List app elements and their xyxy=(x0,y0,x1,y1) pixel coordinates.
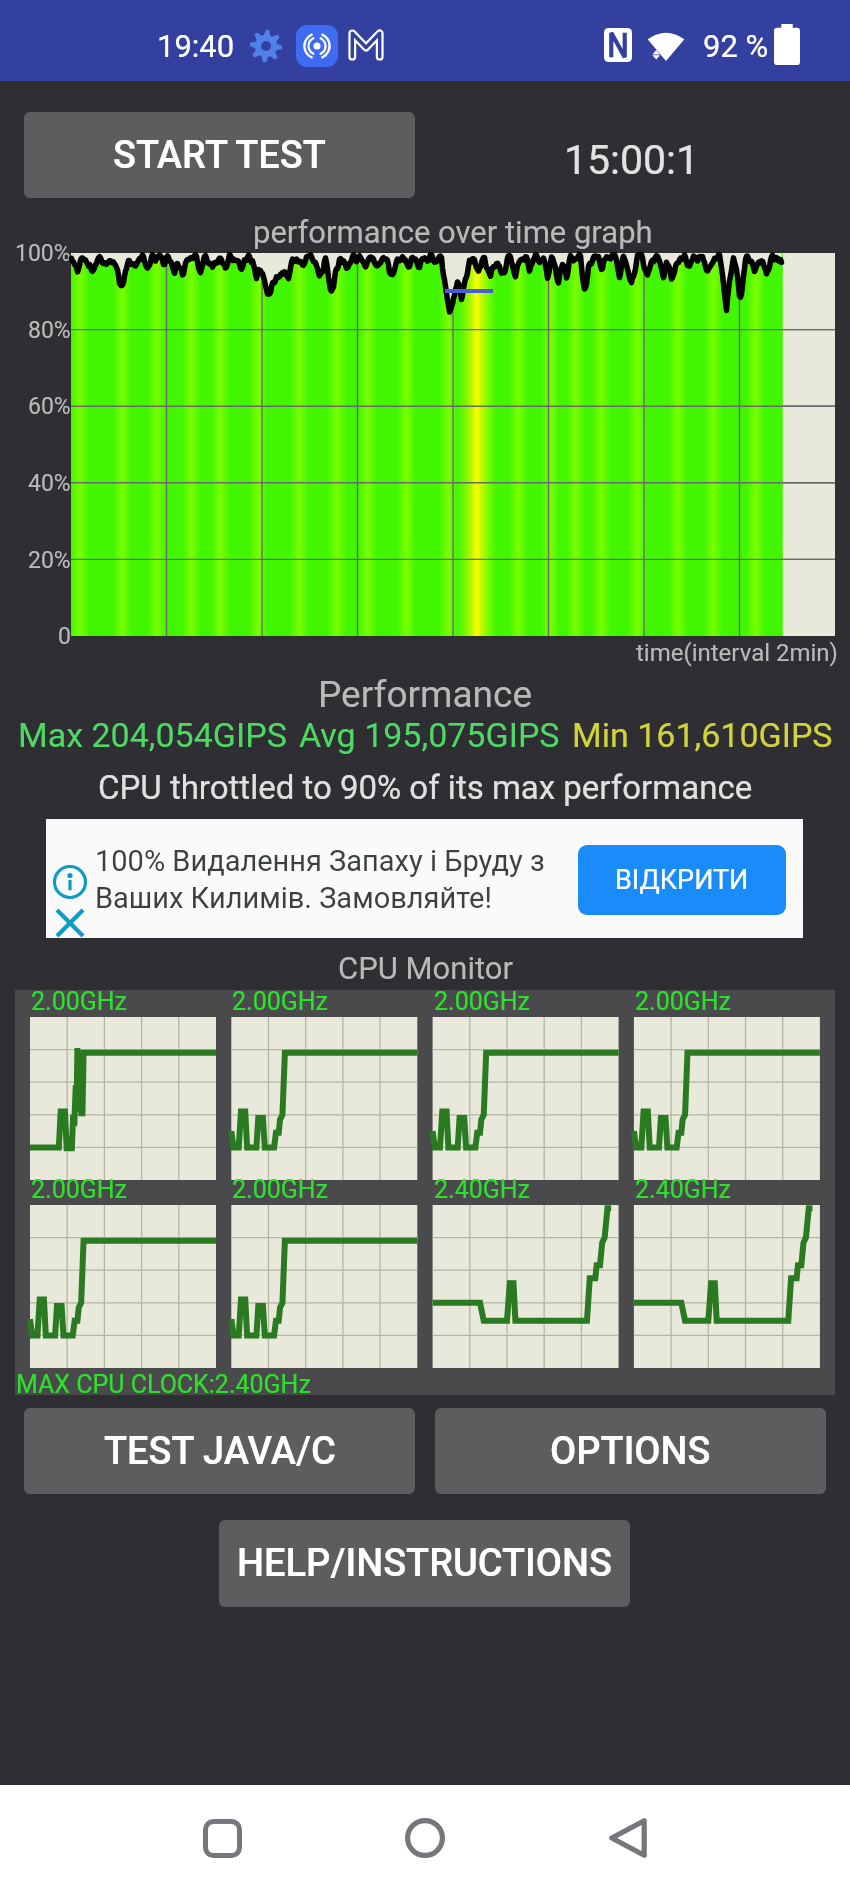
staticText: Performance xyxy=(318,673,533,716)
button[interactable]: OPTIONS xyxy=(435,1408,826,1494)
staticText: 100% xyxy=(15,240,71,267)
button[interactable]: Back xyxy=(597,1806,661,1870)
staticText: TEST JAVA/C xyxy=(104,1429,336,1474)
button[interactable]: TEST JAVA/C xyxy=(24,1408,415,1494)
staticText: Ваших Килимів. Замовляйте! xyxy=(95,881,492,915)
staticText: 2.40GHz xyxy=(434,1175,531,1204)
staticText: OPTIONS xyxy=(550,1429,711,1474)
staticText: 2.40GHz xyxy=(635,1175,732,1204)
staticText: 80% xyxy=(28,317,71,344)
staticText: CPU Monitor xyxy=(338,950,513,986)
staticText: 2.00GHz xyxy=(31,987,128,1016)
staticText: 19:40 xyxy=(157,28,235,64)
button[interactable]: ВІДКРИТИ xyxy=(578,845,786,915)
staticText: 40% xyxy=(28,470,71,497)
staticText: 2.00GHz xyxy=(232,1175,329,1204)
staticText: START TEST xyxy=(113,133,326,178)
staticText: 2.00GHz xyxy=(31,1175,128,1204)
staticText: 60% xyxy=(28,393,71,420)
button[interactable]: Recents xyxy=(190,1806,254,1870)
staticText: time(interval 2min) xyxy=(636,639,838,667)
staticText: CPU throttled to 90% of its max performa… xyxy=(98,768,753,807)
button[interactable]: Home xyxy=(393,1806,457,1870)
other: Ad info xyxy=(52,864,88,900)
staticText: performance over time graph xyxy=(253,214,653,250)
button[interactable]: HELP/INSTRUCTIONS xyxy=(219,1520,630,1607)
staticText: Avg 195,075GIPS xyxy=(299,715,560,755)
staticText: 20% xyxy=(28,547,71,574)
other: Close ad xyxy=(53,906,87,940)
staticText: HELP/INSTRUCTIONS xyxy=(237,1541,612,1586)
staticText: Max 204,054GIPS xyxy=(18,715,287,755)
button[interactable]: Ad info xyxy=(46,819,803,938)
staticText: 0 xyxy=(58,623,71,650)
staticText: 2.00GHz xyxy=(434,987,531,1016)
staticText: 2.00GHz xyxy=(635,987,732,1016)
button[interactable]: START TEST xyxy=(24,112,415,198)
staticText: 15:00:1 xyxy=(564,136,700,180)
staticText: Min 161,610GIPS xyxy=(572,715,833,755)
staticText: 100% Видалення Запаху і Бруду з xyxy=(95,844,545,878)
staticText: 2.00GHz xyxy=(232,987,329,1016)
staticText: MAX CPU CLOCK:2.40GHz xyxy=(16,1370,311,1399)
staticText: ВІДКРИТИ xyxy=(615,864,749,896)
staticText: 92 % xyxy=(703,28,769,64)
